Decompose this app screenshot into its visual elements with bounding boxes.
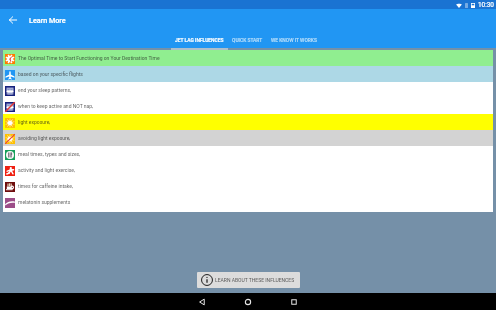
button[interactable]: when to keep active and NOT nap, <box>3 98 493 114</box>
staticText: melatonin supplements <box>18 199 71 205</box>
staticText: end your sleep patterns, <box>18 87 71 93</box>
button[interactable]: based on your specific flights <box>3 66 493 82</box>
button[interactable]: Home <box>240 294 256 310</box>
staticText: WE KNOW IT WORKS <box>271 37 317 43</box>
button[interactable]: activity and light exercise, <box>3 162 493 178</box>
staticText: based on your specific flights <box>18 71 83 77</box>
button[interactable]: LEARN ABOUT THESE INFLUENCES <box>197 272 300 288</box>
button[interactable]: JET LAG INFLUENCES <box>171 32 228 50</box>
button[interactable]: Recent apps <box>286 294 302 310</box>
staticText: JET LAG INFLUENCES <box>175 37 224 43</box>
staticText: The Optimal Time to Start Functioning on… <box>18 55 160 61</box>
button[interactable]: times for caffeine intake, <box>3 178 493 194</box>
button[interactable]: Back <box>3 10 23 30</box>
staticText: times for caffeine intake, <box>18 183 73 189</box>
staticText: avoiding light exposure, <box>18 135 71 141</box>
button[interactable]: The Optimal Time to Start Functioning on… <box>3 50 493 66</box>
button[interactable]: QUICK START <box>228 32 267 50</box>
staticText: 10:30 <box>478 1 494 9</box>
button[interactable]: meal times, types and sizes, <box>3 146 493 162</box>
staticText: QUICK START <box>232 37 263 43</box>
staticText: meal times, types and sizes, <box>18 151 81 157</box>
button[interactable]: WE KNOW IT WORKS <box>267 32 321 50</box>
staticText: activity and light exercise, <box>18 167 75 173</box>
button[interactable]: Back <box>194 294 210 310</box>
staticText: light exposure, <box>18 119 51 125</box>
staticText: LEARN ABOUT THESE INFLUENCES <box>215 277 295 283</box>
button[interactable]: end your sleep patterns, <box>3 82 493 98</box>
button[interactable]: light exposure, <box>3 114 493 130</box>
staticText: when to keep active and NOT nap, <box>18 103 94 109</box>
staticText: Learn More <box>29 16 66 24</box>
button[interactable]: melatonin supplements <box>3 194 493 210</box>
button[interactable]: avoiding light exposure, <box>3 130 493 146</box>
